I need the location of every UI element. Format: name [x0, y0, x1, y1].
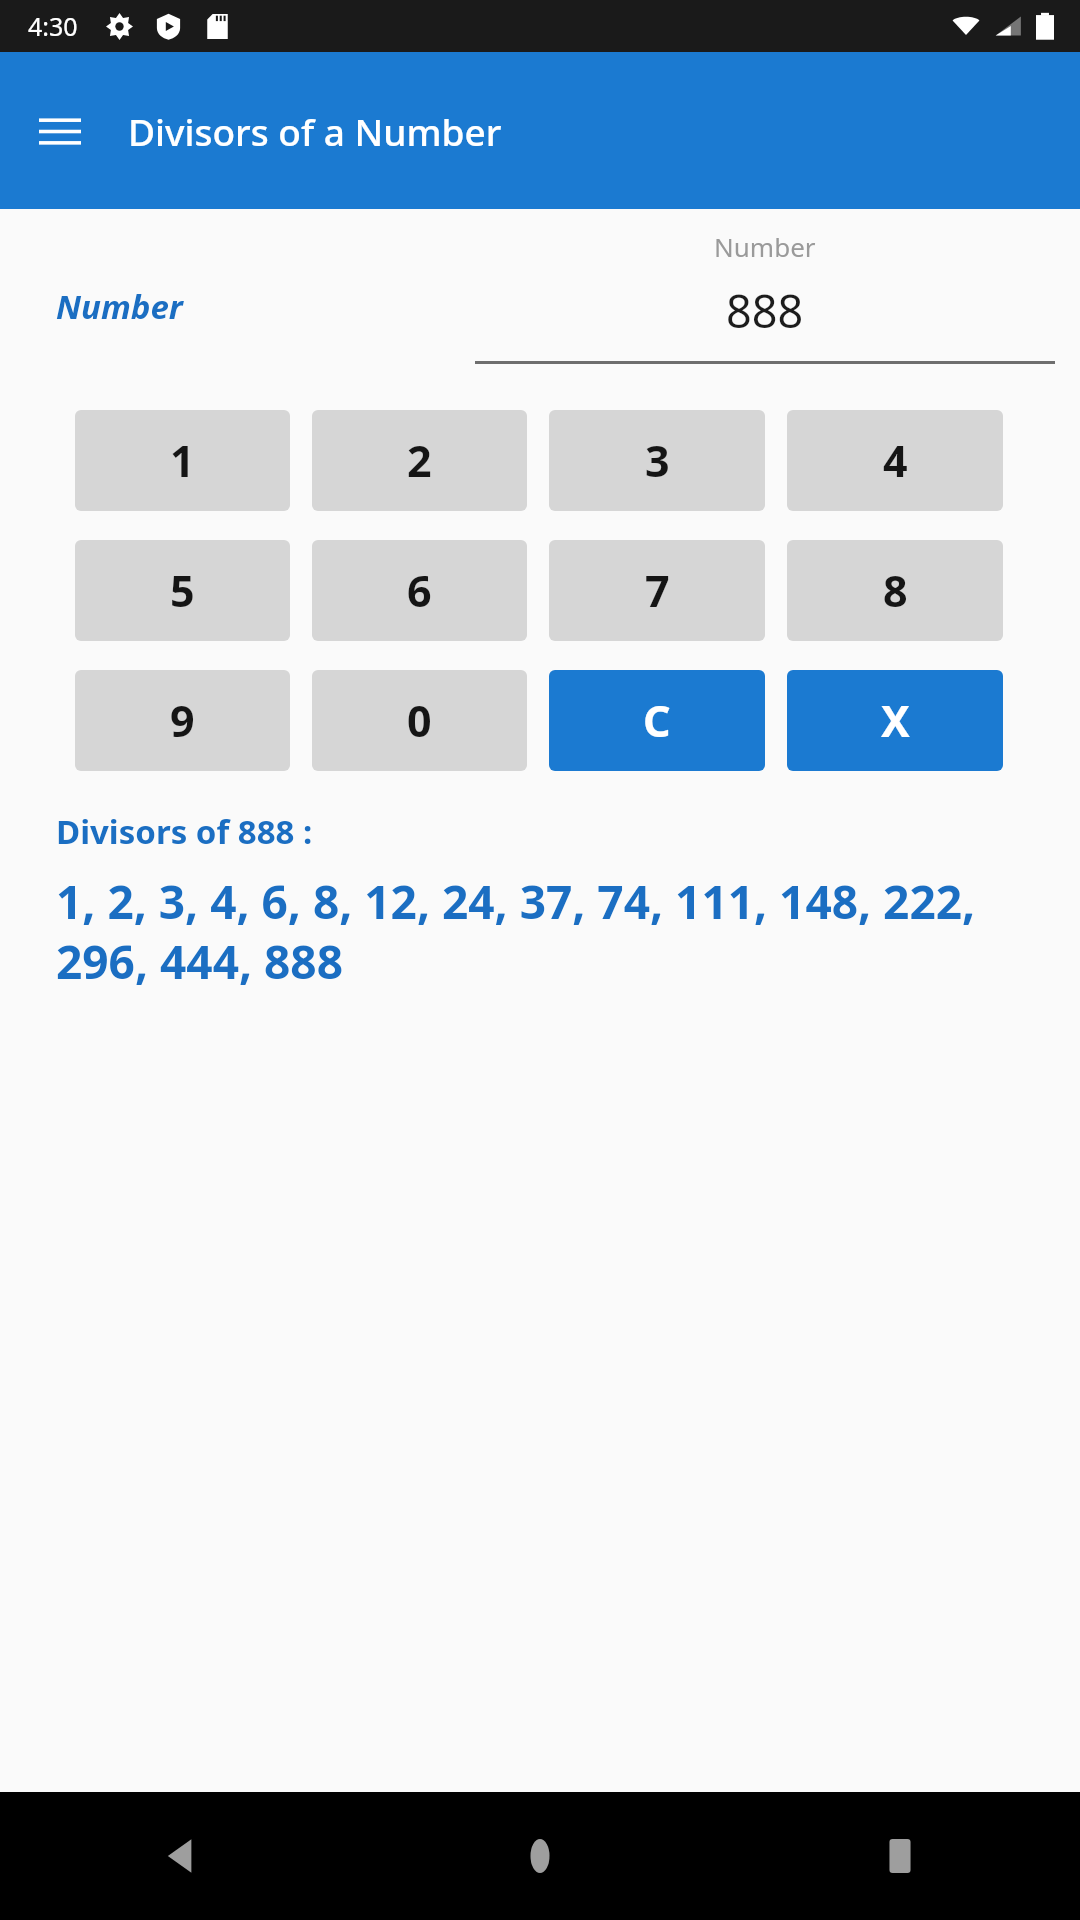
- button[interactable]: 1: [75, 410, 290, 511]
- button[interactable]: 5: [75, 540, 290, 641]
- button[interactable]: Recent apps: [720, 1792, 1080, 1920]
- button[interactable]: 9: [75, 670, 290, 771]
- staticText: Divisors of 888 :: [56, 809, 313, 854]
- button[interactable]: 4: [787, 410, 1003, 511]
- staticText: 4: [883, 431, 908, 490]
- button[interactable]: Back: [0, 1792, 360, 1920]
- staticText: 1: [170, 431, 195, 490]
- button[interactable]: Home: [360, 1792, 720, 1920]
- staticText: C: [643, 691, 671, 750]
- staticText: 888: [726, 280, 804, 341]
- button[interactable]: 3: [549, 410, 765, 511]
- staticText: 0: [407, 691, 432, 750]
- staticText: 7: [645, 561, 670, 620]
- staticText: Number: [56, 284, 183, 329]
- staticText: Number: [714, 229, 816, 264]
- button[interactable]: 2: [312, 410, 527, 511]
- staticText: 6: [407, 561, 432, 620]
- button[interactable]: 8: [787, 540, 1003, 641]
- staticText: Divisors of a Number: [128, 106, 502, 156]
- staticText: 5: [170, 561, 195, 620]
- button[interactable]: X: [787, 670, 1003, 771]
- staticText: 8: [883, 561, 908, 620]
- button[interactable]: Number: [475, 221, 1055, 364]
- staticText: 4:30: [28, 9, 78, 43]
- staticText: 9: [170, 691, 195, 750]
- staticText: 3: [645, 431, 670, 490]
- staticText: 2: [407, 431, 432, 490]
- button[interactable]: 0: [312, 670, 527, 771]
- button[interactable]: Open navigation menu: [28, 99, 92, 163]
- button[interactable]: 6: [312, 540, 527, 641]
- staticText: 1, 2, 3, 4, 6, 8, 12, 24, 37, 74, 111, 1…: [56, 870, 1040, 993]
- staticText: X: [881, 691, 910, 750]
- button[interactable]: C: [549, 670, 765, 771]
- button[interactable]: 7: [549, 540, 765, 641]
